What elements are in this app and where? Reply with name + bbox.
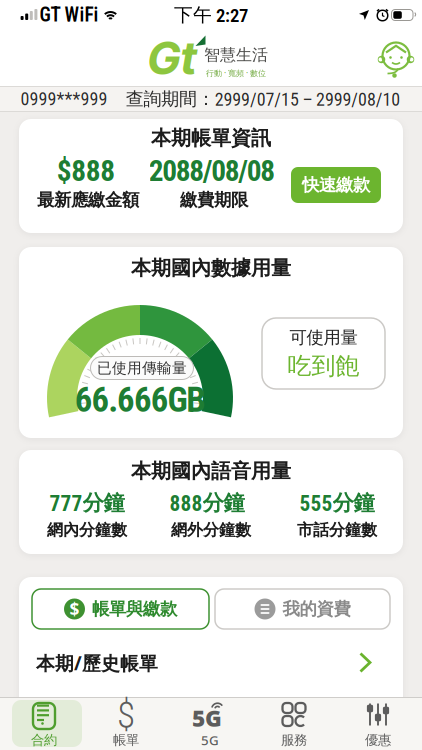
staticText: 帳單與繳款 (92, 598, 177, 620)
staticText: 可使用量 (289, 327, 357, 348)
staticText: 2088/08/08 (149, 154, 275, 188)
staticText: 本期國內數據用量 (131, 256, 291, 280)
button[interactable]: 合約 (5, 697, 89, 749)
button[interactable]: 我的資費 (215, 589, 390, 629)
button[interactable]: 優惠 (336, 697, 420, 749)
staticText: 66.666GB (75, 380, 205, 420)
staticText: 繳費期限 (180, 189, 248, 211)
staticText: 888分鐘 (169, 490, 244, 516)
staticText: 已使用傳輸量 (97, 359, 187, 377)
staticText: 查詢期間：2999/07/15 – 2999/08/10 (126, 88, 400, 110)
staticText: 快速繳款 (302, 174, 370, 196)
staticText: 吃到飽 (287, 351, 359, 381)
staticText: 帳單 (113, 732, 139, 748)
staticText: 777分鐘 (49, 490, 124, 516)
staticText: $ (69, 597, 79, 620)
staticText: 555分鐘 (299, 490, 374, 516)
staticText: 市話分鐘數 (297, 520, 377, 540)
staticText: 下午 2:27 (174, 3, 248, 27)
staticText: 最新應繳金額 (37, 189, 139, 211)
button[interactable]: 快速繳款 (291, 167, 381, 203)
staticText: 網內分鐘數 (47, 520, 127, 540)
staticText: GT WiFi (39, 4, 98, 26)
button[interactable]: 本期/歷史帳單 (19, 627, 403, 689)
staticText: Gt (147, 31, 196, 85)
staticText: 行動 · 寬頻 · 數位 (206, 68, 266, 78)
staticText: 本期國內語音用量 (131, 459, 291, 483)
staticText: 本期/歷史帳單 (36, 651, 158, 675)
staticText: 5G (201, 731, 219, 749)
staticText: 智慧生活 (204, 45, 268, 65)
button[interactable]: $ (32, 589, 209, 629)
staticText: 0999***999 (20, 88, 107, 110)
staticText: 服務 (281, 732, 307, 748)
button[interactable]: 服務 (252, 697, 336, 749)
staticText: 網外分鐘數 (171, 520, 251, 540)
staticText: $ (117, 693, 135, 737)
button[interactable]: 5G (168, 697, 252, 749)
staticText: 合約 (31, 732, 57, 748)
staticText: 5G (192, 703, 222, 733)
button[interactable]: $ (84, 697, 168, 749)
staticText: 我的資費 (282, 598, 350, 620)
staticText: $888 (57, 154, 115, 188)
button[interactable]: 客服 (376, 34, 416, 78)
staticText: 優惠 (365, 732, 391, 748)
staticText: 本期帳單資訊 (151, 126, 271, 150)
